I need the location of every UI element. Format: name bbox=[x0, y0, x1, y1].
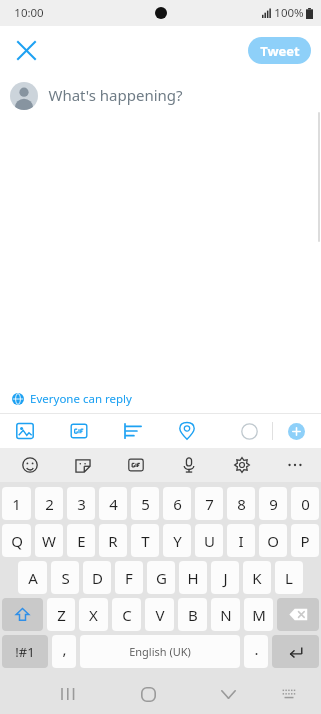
staticText: M bbox=[252, 605, 266, 625]
button[interactable]: Add GIF bbox=[64, 416, 94, 446]
button[interactable]: Keyboard settings bbox=[228, 451, 256, 479]
staticText: L bbox=[285, 568, 293, 588]
button[interactable]: T bbox=[131, 524, 159, 557]
button[interactable]: C bbox=[112, 598, 141, 631]
staticText: S bbox=[61, 568, 70, 588]
button[interactable]: P bbox=[291, 524, 319, 557]
button[interactable]: Change keyboard bbox=[272, 677, 306, 711]
staticText: 8 bbox=[237, 494, 246, 514]
button[interactable]: More options bbox=[281, 451, 309, 479]
button[interactable]: U bbox=[195, 524, 223, 557]
staticText: Q bbox=[11, 531, 23, 551]
staticText: O bbox=[267, 531, 279, 551]
button[interactable]: M bbox=[244, 598, 273, 631]
staticText: 10:00 bbox=[14, 5, 44, 21]
button[interactable]: Tweet bbox=[248, 37, 311, 64]
button[interactable]: I bbox=[227, 524, 255, 557]
staticText: U bbox=[204, 531, 215, 551]
staticText: 0 bbox=[301, 494, 310, 514]
button[interactable]: Add poll bbox=[118, 416, 148, 446]
button[interactable]: !#1 bbox=[2, 635, 48, 668]
staticText: C bbox=[122, 605, 132, 625]
button[interactable]: V bbox=[145, 598, 174, 631]
button[interactable]: Add location bbox=[172, 416, 202, 446]
button[interactable]: R bbox=[99, 524, 127, 557]
button[interactable]: Add photo bbox=[10, 416, 40, 446]
staticText: I bbox=[238, 531, 244, 551]
button[interactable]: Home bbox=[129, 675, 167, 713]
button[interactable]: 4 bbox=[99, 487, 127, 520]
button[interactable]: N bbox=[211, 598, 240, 631]
button[interactable]: Recents bbox=[49, 675, 87, 713]
button[interactable]: 9 bbox=[259, 487, 287, 520]
staticText: W bbox=[42, 531, 56, 551]
button[interactable]: Z bbox=[47, 598, 75, 631]
staticText: 5 bbox=[141, 494, 150, 514]
staticText: Everyone can reply bbox=[30, 391, 132, 407]
button[interactable]: Q bbox=[2, 524, 31, 557]
button[interactable]: 5 bbox=[131, 487, 159, 520]
button[interactable]: 3 bbox=[67, 487, 95, 520]
button[interactable]: 1 bbox=[2, 487, 31, 520]
button[interactable]: A bbox=[18, 561, 47, 594]
button[interactable]: 8 bbox=[227, 487, 255, 520]
button[interactable]: J bbox=[211, 561, 239, 594]
staticText: B bbox=[188, 605, 198, 625]
staticText: Y bbox=[173, 531, 182, 551]
button[interactable]: S bbox=[51, 561, 79, 594]
staticText: 3 bbox=[77, 494, 86, 514]
staticText: V bbox=[155, 605, 165, 625]
button[interactable]: B bbox=[178, 598, 207, 631]
staticText: G bbox=[156, 568, 167, 588]
staticText: H bbox=[187, 568, 199, 588]
staticText: What's happening? bbox=[48, 85, 183, 105]
button[interactable]: Add tweet bbox=[281, 416, 311, 446]
button[interactable]: Enter bbox=[272, 635, 319, 668]
button[interactable]: Emoji bbox=[16, 451, 44, 479]
staticText: X bbox=[89, 605, 98, 625]
staticText: F bbox=[125, 568, 133, 588]
staticText: 100% bbox=[274, 5, 304, 21]
staticText: A bbox=[28, 568, 38, 588]
staticText: D bbox=[92, 568, 103, 588]
staticText: 6 bbox=[173, 494, 182, 514]
button[interactable]: Everyone can reply bbox=[0, 385, 321, 413]
button[interactable]: E bbox=[67, 524, 95, 557]
button[interactable]: GIF keyboard bbox=[122, 451, 150, 479]
button[interactable]: 0 bbox=[291, 487, 319, 520]
button[interactable]: Close bbox=[8, 32, 44, 68]
staticText: P bbox=[300, 531, 310, 551]
button[interactable]: H bbox=[179, 561, 207, 594]
button[interactable]: Hide keyboard bbox=[209, 675, 247, 713]
staticText: . bbox=[254, 639, 259, 659]
staticText: E bbox=[77, 531, 86, 551]
button[interactable]: 6 bbox=[163, 487, 191, 520]
staticText: J bbox=[223, 568, 228, 588]
button[interactable]: Y bbox=[163, 524, 191, 557]
button[interactable]: Profile bbox=[10, 82, 38, 110]
button[interactable]: O bbox=[259, 524, 287, 557]
button[interactable]: 2 bbox=[35, 487, 63, 520]
staticText: 4 bbox=[109, 494, 118, 514]
button[interactable]: 7 bbox=[195, 487, 223, 520]
button[interactable]: Voice input bbox=[175, 451, 203, 479]
button[interactable]: Stickers bbox=[69, 451, 97, 479]
button[interactable]: , bbox=[52, 635, 76, 668]
staticText: K bbox=[252, 568, 262, 588]
button[interactable]: X bbox=[79, 598, 108, 631]
button[interactable]: W bbox=[35, 524, 63, 557]
button[interactable]: G bbox=[147, 561, 175, 594]
button[interactable]: Backspace bbox=[277, 598, 319, 631]
staticText: English (UK) bbox=[129, 644, 191, 659]
button[interactable]: . bbox=[244, 635, 268, 668]
button[interactable]: English (UK) bbox=[80, 635, 240, 668]
button[interactable]: F bbox=[115, 561, 143, 594]
staticText: N bbox=[220, 605, 232, 625]
staticText: 9 bbox=[269, 494, 278, 514]
button[interactable]: Character count bbox=[234, 416, 264, 446]
button[interactable]: Shift bbox=[2, 598, 43, 631]
button[interactable]: K bbox=[243, 561, 271, 594]
button[interactable]: D bbox=[83, 561, 111, 594]
staticText: 1 bbox=[12, 494, 21, 514]
button[interactable]: L bbox=[275, 561, 303, 594]
